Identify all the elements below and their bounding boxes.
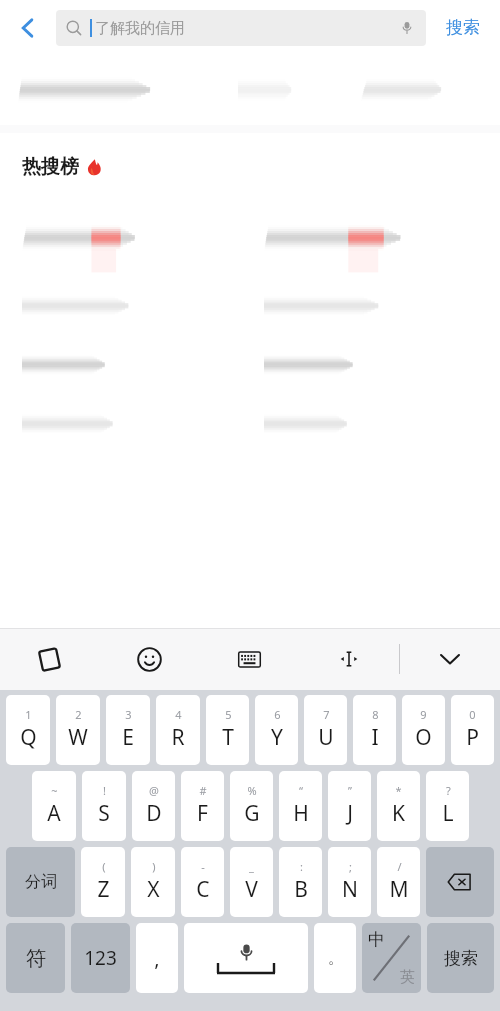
staticText: %	[247, 783, 257, 798]
staticText: K	[392, 799, 405, 828]
staticText: !	[103, 783, 106, 798]
staticText: W	[68, 723, 88, 752]
button[interactable]: !	[82, 771, 126, 841]
button[interactable]: 6	[255, 695, 298, 765]
staticText: D	[146, 799, 162, 828]
staticText: C	[196, 875, 210, 904]
staticText: ;	[349, 859, 352, 874]
staticText: P	[466, 723, 479, 752]
button[interactable]: ”	[328, 771, 371, 841]
button[interactable]: Hide keyboard	[400, 628, 500, 690]
staticText: R	[171, 723, 185, 752]
staticText: X	[147, 875, 160, 904]
button[interactable]: Voice search	[392, 13, 422, 43]
staticText: V	[245, 875, 258, 904]
staticText: ~	[51, 783, 58, 798]
staticText: #	[199, 783, 207, 798]
staticText: (	[102, 859, 106, 874]
staticText: 3	[125, 707, 132, 722]
staticText: _	[249, 859, 254, 874]
staticText: Q	[20, 723, 37, 752]
staticText: F	[197, 799, 208, 828]
staticText: ,	[154, 945, 160, 972]
staticText: 5	[225, 707, 232, 722]
staticText: L	[442, 799, 454, 828]
button[interactable]: Emoji	[99, 628, 199, 690]
button[interactable]: Keyboard layout	[199, 628, 299, 690]
button[interactable]: Move cursor	[299, 628, 399, 690]
staticText: ?	[446, 783, 451, 798]
button[interactable]: Chinese English toggle	[362, 923, 421, 993]
staticText: 热搜榜	[22, 155, 79, 179]
button[interactable]: (	[81, 847, 125, 917]
staticText: *	[395, 783, 402, 798]
staticText: )	[152, 859, 156, 874]
button[interactable]: 4	[156, 695, 200, 765]
staticText: 123	[84, 945, 117, 971]
button[interactable]: 123	[71, 923, 130, 993]
staticText: O	[415, 723, 432, 752]
staticText: G	[244, 799, 260, 828]
staticText: @	[149, 783, 159, 798]
button[interactable]: ?	[426, 771, 469, 841]
staticText: U	[318, 723, 334, 752]
button[interactable]: 9	[402, 695, 445, 765]
staticText: 8	[372, 707, 379, 722]
button[interactable]: 搜索	[427, 923, 494, 993]
staticText: 6	[274, 707, 281, 722]
staticText: 分词	[25, 872, 57, 892]
button[interactable]: 5	[206, 695, 249, 765]
staticText: 0	[469, 707, 476, 722]
button[interactable]: Space, voice input	[184, 923, 308, 993]
staticText: B	[294, 875, 308, 904]
button[interactable]: /	[377, 847, 420, 917]
button[interactable]: %	[230, 771, 273, 841]
button[interactable]: @	[132, 771, 175, 841]
button[interactable]: _	[230, 847, 273, 917]
button[interactable]: “	[279, 771, 322, 841]
button[interactable]: Backspace	[426, 847, 494, 917]
staticText: S	[98, 799, 110, 828]
staticText: 了解我的信用	[95, 19, 185, 38]
staticText: A	[47, 799, 61, 828]
staticText: M	[389, 875, 409, 904]
staticText: :	[300, 859, 303, 874]
staticText: I	[371, 723, 379, 752]
button[interactable]: ,	[136, 923, 178, 993]
button[interactable]: 0	[451, 695, 494, 765]
button[interactable]: -	[181, 847, 224, 917]
staticText: /	[397, 859, 402, 874]
staticText: 9	[420, 707, 427, 722]
button[interactable]: 。	[314, 923, 356, 993]
staticText: 2	[75, 707, 82, 722]
button[interactable]: 2	[56, 695, 100, 765]
button[interactable]: 搜索	[426, 0, 500, 55]
button[interactable]: 8	[353, 695, 396, 765]
button[interactable]: 符	[6, 923, 65, 993]
staticText: -	[201, 859, 205, 874]
button[interactable]: *	[377, 771, 420, 841]
button[interactable]: ;	[328, 847, 371, 917]
button[interactable]: Back	[0, 0, 56, 55]
button[interactable]: 分词	[6, 847, 75, 917]
staticText: 1	[25, 707, 32, 722]
button[interactable]: )	[131, 847, 175, 917]
staticText: 搜索	[446, 17, 480, 38]
button[interactable]: 7	[304, 695, 347, 765]
button[interactable]: 3	[106, 695, 150, 765]
staticText: Z	[97, 875, 110, 904]
staticText: 。	[328, 949, 343, 968]
button[interactable]: Sogou input settings	[0, 628, 99, 690]
button[interactable]: 了解我的信用	[56, 10, 426, 46]
staticText: 中	[368, 929, 385, 950]
staticText: 4	[175, 707, 182, 722]
staticText: N	[342, 875, 358, 904]
button[interactable]: 1	[6, 695, 50, 765]
staticText: Y	[271, 723, 283, 752]
button[interactable]: #	[181, 771, 224, 841]
button[interactable]: ~	[32, 771, 76, 841]
button[interactable]: :	[279, 847, 322, 917]
staticText: E	[122, 723, 134, 752]
staticText: “	[299, 783, 303, 798]
staticText: J	[347, 799, 353, 828]
